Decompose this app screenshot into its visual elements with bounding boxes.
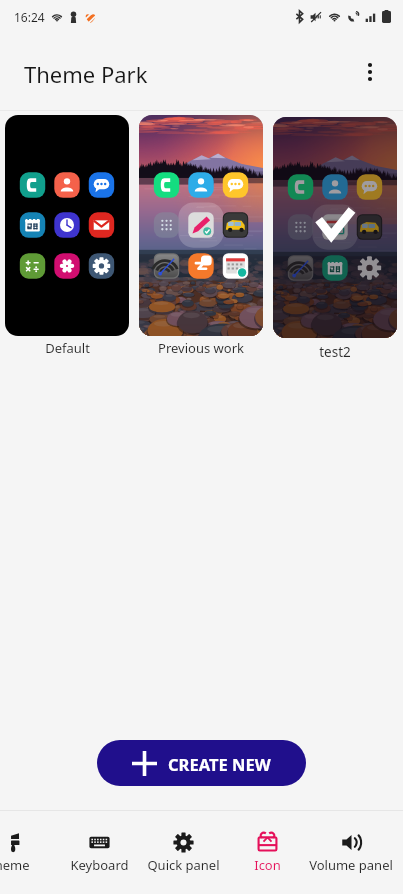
button[interactable]: Theme xyxy=(0,811,58,894)
button[interactable]: Previous work xyxy=(139,115,263,357)
button[interactable]: More options xyxy=(349,51,391,93)
staticText: Volume panel xyxy=(309,856,393,874)
staticText: Previous work xyxy=(158,339,244,357)
staticText: Default xyxy=(45,339,90,357)
staticText: 16:24 xyxy=(14,9,45,25)
button[interactable]: Volume panel xyxy=(309,811,393,894)
staticText: Keyboard xyxy=(70,856,129,874)
button[interactable]: Icon xyxy=(225,811,309,894)
staticText: CREATE NEW xyxy=(168,753,271,775)
staticText: Theme xyxy=(0,856,30,874)
button[interactable]: test2 xyxy=(273,117,397,361)
button[interactable]: Keyboard xyxy=(58,811,141,894)
staticText: Icon xyxy=(254,856,281,874)
button[interactable]: Quick panel xyxy=(141,811,225,894)
button[interactable]: Default xyxy=(5,115,129,357)
staticText: test2 xyxy=(319,343,351,361)
staticText: Quick panel xyxy=(147,856,220,874)
button[interactable]: CREATE NEW xyxy=(97,740,306,786)
staticText: Theme Park xyxy=(24,59,148,89)
